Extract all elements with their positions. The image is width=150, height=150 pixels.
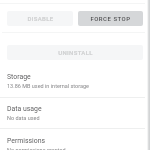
button[interactable]: Permissions: [0, 135, 145, 150]
staticText: Data usage: [7, 105, 42, 113]
staticText: No data used: [7, 115, 40, 121]
button[interactable]: UNINSTALL: [7, 45, 143, 60]
button[interactable]: Data usage: [0, 103, 145, 131]
staticText: UNINSTALL: [58, 49, 93, 56]
staticText: 13.86 MB used in internal storage: [7, 83, 89, 89]
staticText: No permissions granted: [7, 147, 66, 150]
button[interactable]: FORCE STOP: [78, 11, 143, 26]
staticText: Permissions: [7, 137, 46, 145]
staticText: FORCE STOP: [90, 15, 131, 22]
button[interactable]: DISABLE: [7, 11, 73, 26]
staticText: DISABLE: [27, 15, 54, 22]
button[interactable]: Storage: [0, 71, 145, 99]
staticText: Storage: [7, 73, 31, 81]
